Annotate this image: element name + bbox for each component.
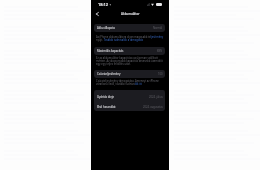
staticText: Ez az akkumulátor kapacitása az újonnan …: [96, 56, 166, 60]
button[interactable]: Első használat: [94, 102, 165, 111]
button[interactable]: Back: [93, 10, 101, 18]
button[interactable]: Csúcsteljesítmény: [94, 70, 165, 78]
staticText: egy-egy teljes feltöltés után.: [96, 62, 131, 66]
button[interactable]: Maximális kapacitás: [94, 47, 165, 55]
staticText: 88%: [157, 49, 163, 53]
staticText: Gyártás ideje: [97, 95, 115, 99]
staticText: 100: [158, 72, 163, 76]
staticText: 18:12: [98, 2, 108, 7]
staticText: Akku állapota: [97, 26, 115, 30]
button[interactable]: Gyártás ideje: [94, 92, 165, 102]
staticText: Maximális kapacitás: [97, 49, 124, 53]
staticText: mérten. Az alacsonyabb kapacitás keveseb…: [96, 59, 166, 63]
staticText: Első használat: [97, 105, 116, 109]
staticText: Normál: [153, 26, 163, 30]
staticText: Akkumulátor: [121, 12, 140, 16]
staticText: 2024. augusztus: [143, 105, 163, 109]
staticText: nyújt. További tudnivalók a támogatás: [96, 38, 144, 42]
staticText: Az iPhone akkumulátora olyan magasabb te…: [96, 35, 164, 39]
staticText: váratlanul leáll, további tudnivalók itt: [96, 82, 142, 86]
button[interactable]: Akku állapota: [94, 24, 165, 32]
staticText: 2024. július: [149, 95, 163, 99]
staticText: Csúcsteljesítmény támogatása. Amennyi az…: [96, 79, 159, 83]
staticText: Csúcsteljesítmény: [97, 72, 121, 76]
